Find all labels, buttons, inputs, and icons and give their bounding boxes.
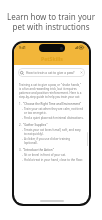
staticText: Learn how to train your pet with instruc… [3, 11, 99, 32]
staticText: 3. [19, 148, 22, 152]
staticText: A clicker, if you use clicker training (… [24, 137, 84, 145]
staticText: Training a cat to give a paw, or "shake … [19, 83, 84, 99]
staticText: Hold a treat in your hand, close to the … [24, 158, 83, 162]
staticText: Sit or kneel in front of your cat. [24, 153, 66, 157]
staticText: Treats your cat loves (small, soft, and … [24, 128, 84, 136]
staticText: - [22, 128, 23, 132]
staticText: - [22, 107, 23, 111]
staticText: How to train a cat to give a paw? [26, 71, 80, 75]
staticText: 1. [19, 102, 22, 106]
staticText: "Gather Supplies" [23, 123, 48, 127]
staticText: PetSkills [41, 55, 63, 62]
staticText: - [22, 158, 23, 162]
other: Clear search [80, 71, 83, 74]
staticText: Train your cat when they are calm, not t… [24, 107, 84, 115]
staticText: 9:41 [19, 45, 26, 50]
other: Search [20, 71, 24, 75]
staticText: 2. [19, 123, 22, 127]
staticText: - [22, 116, 23, 120]
staticText: "Choose the Right Time and Environment" [23, 102, 82, 106]
staticText: Find a quiet place with minimal distract… [24, 116, 84, 120]
staticText: - [22, 137, 23, 141]
staticText: "Introduce the Action" [23, 148, 54, 152]
staticText: - [22, 153, 23, 157]
button[interactable]: Search [18, 68, 85, 77]
